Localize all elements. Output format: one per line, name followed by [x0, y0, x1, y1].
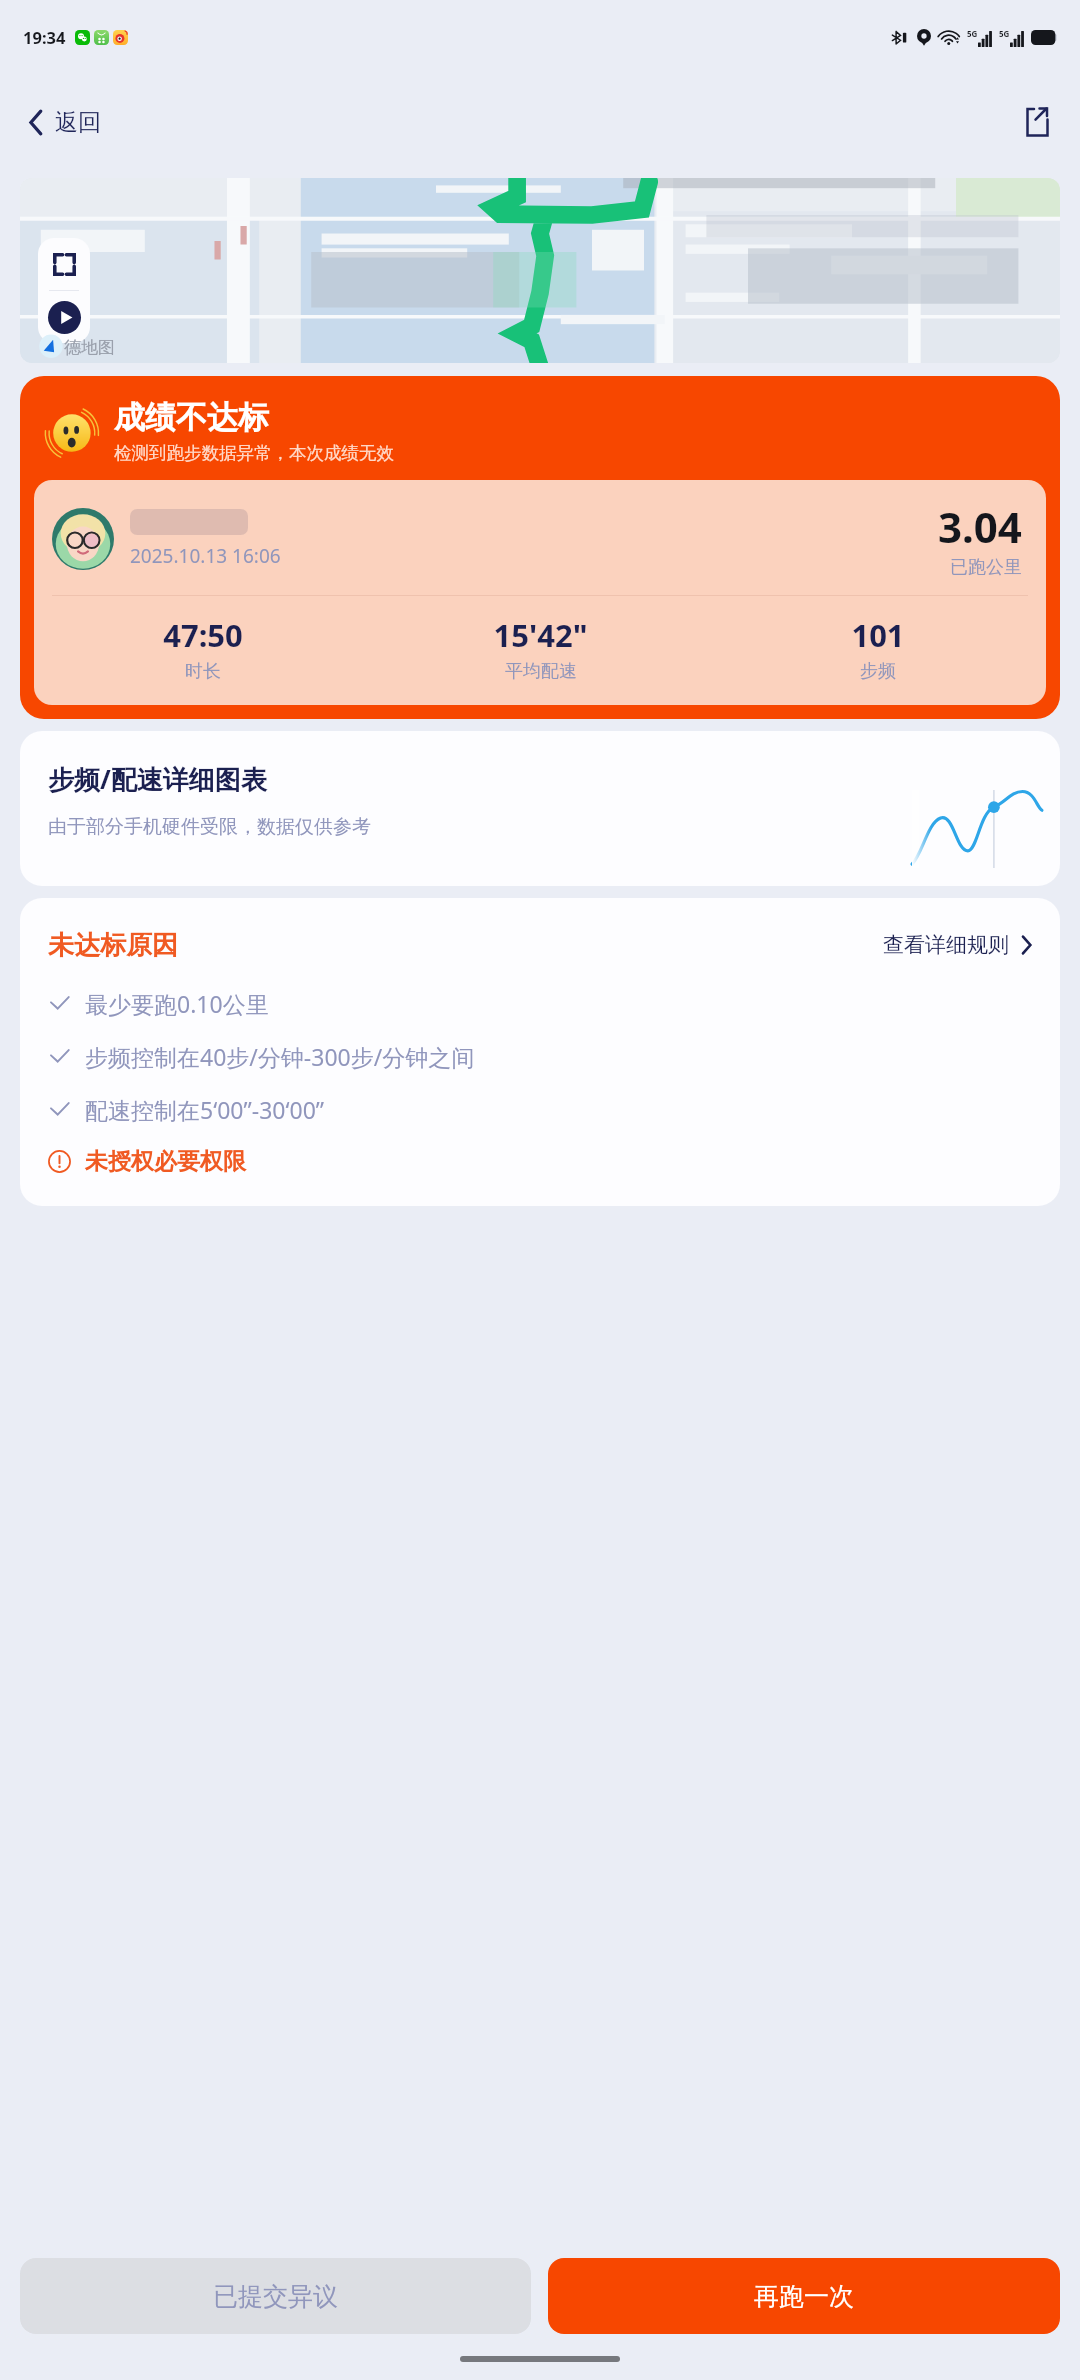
staticText: 5G [999, 28, 1010, 39]
staticText: 步频/配速详细图表 [48, 761, 267, 797]
button[interactable]: Fullscreen [20, 178, 1060, 363]
staticText: 查看详细规则 [883, 932, 1009, 958]
button[interactable]: 返回 [0, 100, 115, 145]
button[interactable]: Fullscreen [38, 238, 90, 290]
staticText: 5G [967, 28, 978, 39]
button[interactable]: 查看详细规则 [879, 928, 1036, 962]
staticText: 101 [851, 614, 905, 656]
staticText: 47:50 [163, 614, 243, 656]
button[interactable]: Play route [38, 291, 90, 343]
staticText: 返回 [55, 108, 101, 137]
staticText: 平均配速 [505, 660, 577, 683]
button[interactable]: Share [1015, 97, 1060, 147]
button[interactable]: 已提交异议 [20, 2258, 531, 2334]
staticText: 步频控制在40步/分钟-300步/分钟之间 [85, 1041, 475, 1072]
staticText: 检测到跑步数据异常，本次成绩无效 [114, 442, 394, 464]
staticText: 19:34 [23, 26, 66, 48]
staticText: 15'42" [493, 614, 588, 656]
staticText: 最少要跑0.10公里 [85, 988, 269, 1019]
staticText: 再跑一次 [754, 2281, 854, 2312]
staticText: 未授权必要权限 [85, 1147, 246, 1176]
staticText: 时长 [185, 660, 221, 683]
staticText: 德地图 [64, 337, 115, 358]
staticText: 已提交异议 [213, 2281, 338, 2312]
staticText: 3.04 [938, 498, 1022, 555]
staticText: 未达标原因 [48, 929, 178, 962]
staticText: 已跑公里 [950, 556, 1022, 579]
staticText: 2025.10.13 16:06 [130, 543, 281, 569]
button[interactable]: 步频/配速详细图表 [20, 731, 1060, 886]
staticText: 由于部分手机硬件受限，数据仅供参考 [48, 815, 371, 839]
staticText: 配速控制在5‘00”-30‘00” [85, 1094, 325, 1125]
staticText: 步频 [860, 660, 896, 683]
staticText: 成绩不达标 [114, 398, 269, 437]
button[interactable]: 再跑一次 [548, 2258, 1060, 2334]
